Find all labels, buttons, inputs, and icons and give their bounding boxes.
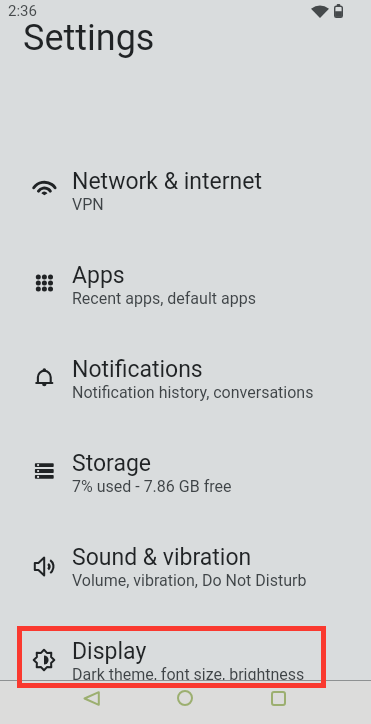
button[interactable]: [266, 688, 290, 708]
staticText: Display: [72, 638, 147, 665]
staticText: Volume, vibration, Do Not Disturb: [72, 571, 307, 590]
staticText: Notifications: [72, 356, 203, 383]
button[interactable]: Sound & vibration: [0, 519, 371, 613]
button[interactable]: Storage: [0, 425, 371, 519]
button[interactable]: Display: [0, 613, 371, 707]
staticText: VPN: [72, 195, 104, 214]
staticText: Apps: [72, 262, 125, 289]
button[interactable]: [79, 688, 103, 708]
staticText: 7% used - 7.86 GB free: [72, 477, 232, 496]
staticText: 2:36: [8, 2, 37, 20]
staticText: Notification history, conversations: [72, 383, 314, 402]
button[interactable]: [173, 688, 197, 708]
staticText: Settings: [23, 17, 155, 59]
button[interactable]: Network & internet: [0, 143, 371, 237]
staticText: Storage: [72, 450, 152, 477]
staticText: Network & internet: [72, 168, 262, 195]
button[interactable]: Apps: [0, 237, 371, 331]
button[interactable]: Notifications: [0, 331, 371, 425]
staticText: Sound & vibration: [72, 544, 252, 571]
staticText: Dark theme, font size, brightness: [72, 665, 305, 684]
staticText: Recent apps, default apps: [72, 289, 256, 308]
